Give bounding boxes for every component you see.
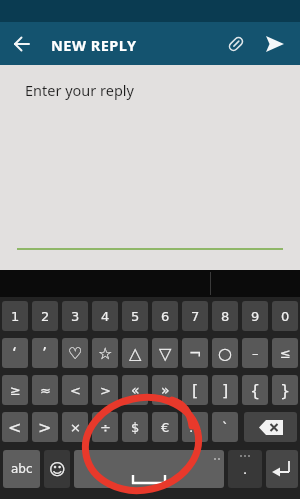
staticText: ] [222, 381, 229, 400]
button[interactable]: < [2, 412, 28, 442]
staticText: ` [222, 420, 229, 435]
staticText: ÷ [100, 420, 111, 435]
staticText: < [8, 418, 22, 437]
button[interactable]: ] [212, 375, 238, 405]
staticText: ¬ [189, 345, 202, 362]
staticText: ’ [42, 344, 48, 363]
staticText: ‘ [12, 344, 18, 363]
staticText: ▽ [159, 344, 172, 363]
button[interactable]: 4 [92, 301, 118, 331]
staticText: … [189, 420, 202, 435]
staticText: « [131, 382, 140, 398]
button[interactable]: { [242, 375, 268, 405]
button[interactable]: 6 [152, 301, 178, 331]
button[interactable] [244, 412, 297, 442]
button[interactable]: [ [182, 375, 208, 405]
button[interactable]: △ [122, 338, 148, 368]
staticText: ☺ [49, 460, 66, 479]
button[interactable]: 5 [122, 301, 148, 331]
staticText: } [280, 381, 291, 400]
button[interactable]: 9 [242, 301, 268, 331]
button[interactable]: 8 [212, 301, 238, 331]
staticText: 1 [11, 309, 20, 324]
button[interactable]: × [62, 412, 88, 442]
button[interactable]: ≥ [2, 375, 28, 405]
button[interactable] [266, 450, 298, 488]
button[interactable]: > [32, 412, 58, 442]
button[interactable]: « [122, 375, 148, 405]
staticText: $ [131, 420, 140, 435]
button[interactable]: ` [212, 412, 238, 442]
staticText: { [250, 381, 261, 400]
button[interactable]: … [182, 412, 208, 442]
button[interactable]: – [242, 338, 268, 368]
staticText: NEW REPLY [51, 35, 137, 55]
button[interactable] [226, 34, 246, 54]
staticText: 7 [191, 309, 200, 324]
button[interactable]: » [152, 375, 178, 405]
staticText: △ [129, 344, 142, 363]
staticText: » [161, 382, 170, 398]
staticText: 5 [131, 309, 140, 324]
button[interactable]: ≈ [32, 375, 58, 405]
staticText: 2 [41, 309, 50, 324]
button[interactable]: 7 [182, 301, 208, 331]
button[interactable] [264, 34, 286, 54]
staticText: Enter your reply [25, 80, 135, 100]
button[interactable]: 0 [272, 301, 298, 331]
button[interactable]: ÷ [92, 412, 118, 442]
button[interactable]: ≤ [272, 338, 298, 368]
staticText: [ [192, 381, 199, 400]
staticText: 6 [161, 309, 170, 324]
staticText: × [70, 420, 81, 435]
staticText: 8 [221, 309, 230, 324]
button[interactable]: 3 [62, 301, 88, 331]
button[interactable]: ○ [212, 338, 238, 368]
staticText: 9 [251, 309, 260, 324]
button[interactable]: ☆ [92, 338, 118, 368]
staticText: ≥ [10, 383, 21, 398]
staticText: 4 [101, 309, 110, 324]
button[interactable] [0, 65, 300, 270]
staticText: abc [11, 462, 33, 476]
button[interactable]: $ [122, 412, 148, 442]
staticText: . [243, 462, 248, 477]
button[interactable] [12, 34, 32, 54]
staticText: – [252, 346, 259, 361]
button[interactable]: € [152, 412, 178, 442]
button[interactable]: < [62, 375, 88, 405]
staticText: 0 [281, 309, 290, 324]
button[interactable]: } [272, 375, 298, 405]
staticText: ≤ [280, 346, 291, 361]
button[interactable]: > [92, 375, 118, 405]
button[interactable]: ’ [32, 338, 58, 368]
staticText: ≈ [40, 383, 51, 398]
staticText: > [100, 383, 111, 398]
button[interactable]: ♡ [62, 338, 88, 368]
button[interactable]: ¬ [182, 338, 208, 368]
button[interactable]: . [228, 450, 262, 488]
button[interactable] [74, 450, 224, 488]
button[interactable]: 2 [32, 301, 58, 331]
staticText: < [70, 383, 81, 398]
button[interactable]: ‘ [2, 338, 28, 368]
staticText: > [38, 418, 52, 437]
staticText: 3 [71, 309, 80, 324]
button[interactable]: 1 [2, 301, 28, 331]
staticText: ○ [218, 344, 232, 363]
staticText: ☆ [98, 344, 113, 363]
button[interactable]: ▽ [152, 338, 178, 368]
button[interactable]: abc [3, 450, 40, 488]
staticText: € [161, 420, 170, 435]
button[interactable]: ☺ [44, 450, 70, 488]
staticText: ♡ [68, 344, 83, 363]
